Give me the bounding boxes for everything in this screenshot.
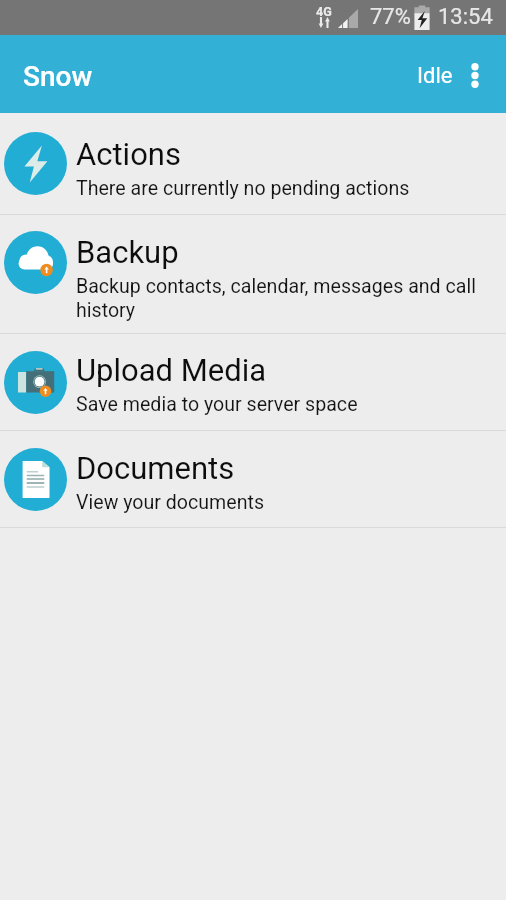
- staticText: Snow: [23, 60, 93, 93]
- staticText: There are currently no pending actions: [76, 177, 410, 200]
- button[interactable]: Actions: [0, 113, 506, 214]
- staticText: View your documents: [76, 491, 265, 514]
- staticText: Upload Media: [76, 352, 267, 388]
- button[interactable]: Upload Media: [0, 334, 506, 430]
- staticText: 4G: [316, 4, 332, 19]
- staticText: Actions: [76, 136, 181, 172]
- staticText: Backup contacts, calendar, messages and …: [76, 275, 478, 322]
- button[interactable]: Idle: [407, 52, 463, 100]
- staticText: Save media to your server space: [76, 393, 358, 416]
- staticText: 13:54: [438, 4, 493, 30]
- button[interactable]: Documents: [0, 431, 506, 527]
- button[interactable]: More options: [449, 49, 501, 101]
- staticText: Idle: [417, 63, 453, 89]
- staticText: Backup: [76, 234, 179, 270]
- staticText: Documents: [76, 450, 235, 486]
- button[interactable]: Backup: [0, 215, 506, 333]
- staticText: 77%: [370, 4, 411, 30]
